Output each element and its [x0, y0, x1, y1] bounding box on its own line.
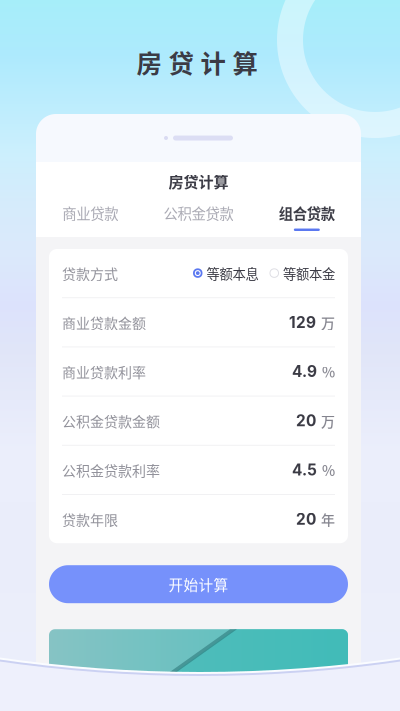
button[interactable]: 开始计算	[49, 565, 348, 603]
staticText: %	[322, 460, 335, 480]
staticText: 公积金贷款利率	[62, 460, 160, 480]
staticText: 万	[321, 411, 335, 431]
staticText: 年	[321, 509, 335, 529]
staticText: 贷款方式	[62, 263, 118, 283]
button[interactable]: 等额本金	[269, 263, 335, 283]
staticText: 组合贷款	[279, 203, 335, 223]
button[interactable]: 等额本息	[193, 263, 258, 283]
staticText: 商业贷款利率	[62, 361, 146, 382]
staticText: 20	[296, 411, 316, 430]
staticText: 等额本金	[283, 263, 335, 283]
staticText: 4.9	[292, 362, 317, 381]
staticText: 公积金贷款	[163, 203, 233, 223]
staticText: 商业贷款	[62, 203, 118, 223]
staticText: %	[322, 361, 335, 382]
button[interactable]: 公积金贷款	[144, 200, 253, 237]
staticText: 20	[296, 510, 316, 528]
staticText: 房贷计算	[168, 170, 228, 192]
staticText: 4.5	[292, 461, 317, 479]
staticText: 万	[321, 312, 335, 332]
staticText: 129	[289, 313, 316, 332]
button[interactable]: 商业贷款	[36, 200, 144, 237]
staticText: 商业贷款金额	[62, 312, 146, 332]
staticText: 开始计算	[168, 574, 228, 595]
staticText: 房贷计算	[136, 44, 257, 80]
staticText: 公积金贷款金额	[62, 411, 160, 431]
staticText: 等额本息	[206, 263, 258, 283]
button[interactable]: 组合贷款	[253, 200, 361, 237]
staticText: 贷款年限	[62, 509, 118, 529]
